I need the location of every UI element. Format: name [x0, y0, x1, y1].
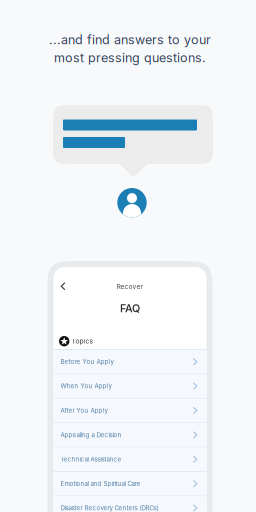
staticText: Technical Assistance	[60, 456, 121, 463]
button[interactable]: After You Apply	[53, 399, 206, 423]
staticText: FAQ	[120, 302, 140, 315]
staticText: most pressing questions.	[54, 50, 206, 65]
button[interactable]: Before You Apply	[53, 350, 206, 374]
staticText: Emotional and Spiritual Care	[60, 480, 140, 487]
staticText: When You Apply	[60, 382, 111, 390]
button[interactable]: Emotional and Spiritual Care	[53, 472, 206, 496]
staticText: ...and find answers to your	[49, 32, 211, 47]
button[interactable]: Disaster Recovery Centers (DRCs)	[53, 496, 206, 512]
button[interactable]: When You Apply	[53, 374, 206, 399]
button[interactable]: Technical Assistance	[53, 448, 206, 472]
staticText: Topics	[71, 337, 92, 345]
staticText: Recover	[116, 282, 143, 291]
staticText: Appealing a Decision	[60, 431, 121, 439]
staticText: Disaster Recovery Centers (DRCs)	[60, 504, 158, 512]
staticText: After You Apply	[60, 407, 107, 414]
button[interactable]: Appealing a Decision	[53, 423, 206, 448]
button[interactable]: Back	[53, 277, 71, 295]
staticText: Before You Apply	[60, 358, 113, 365]
